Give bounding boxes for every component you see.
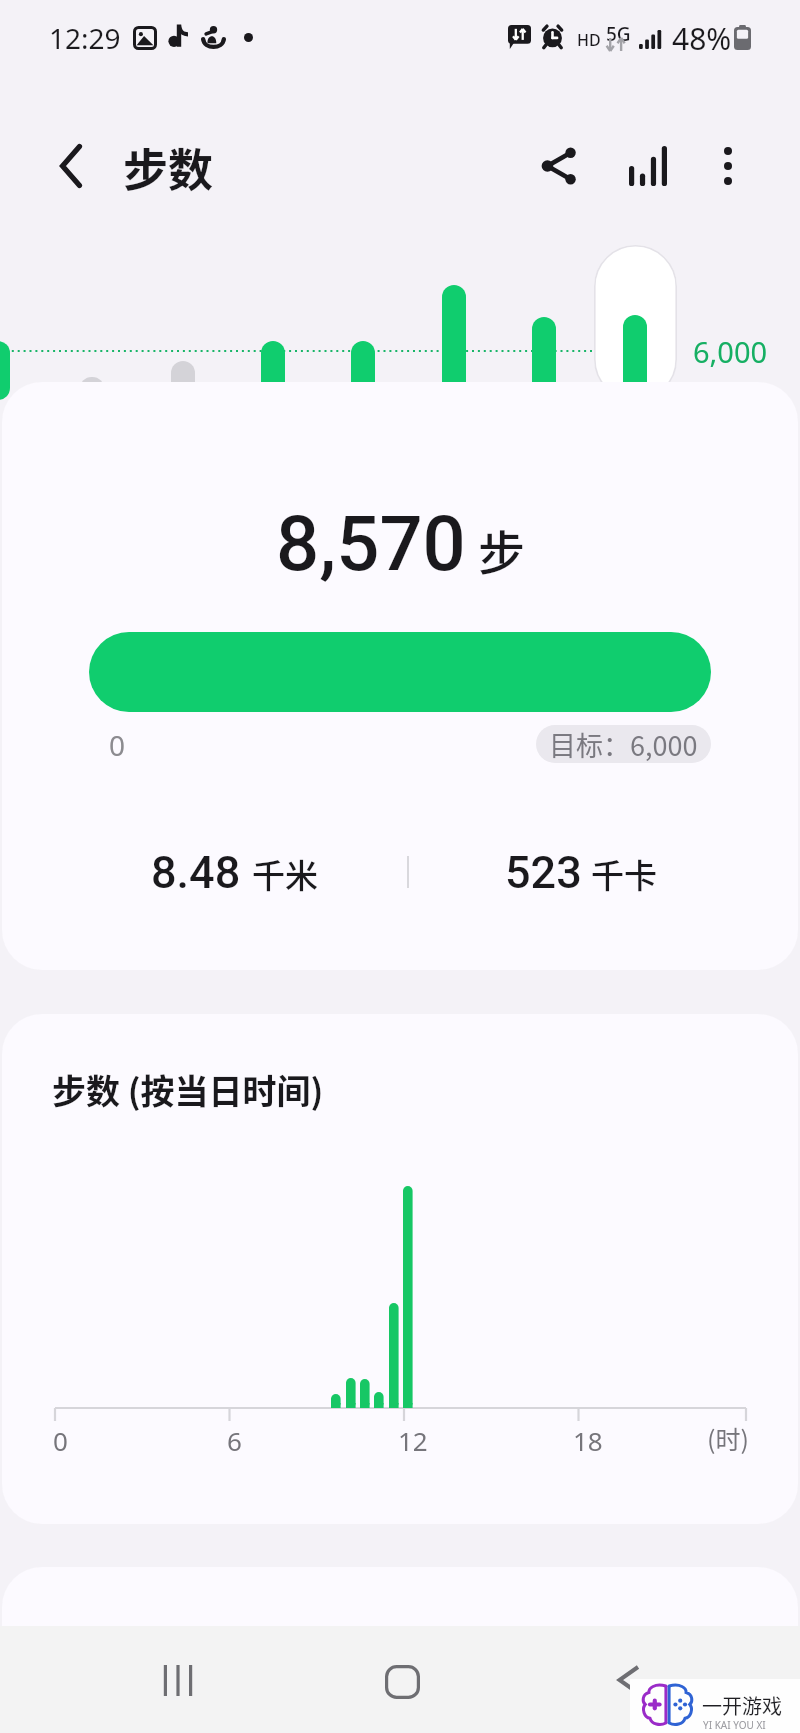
staticText: 0 (53, 1423, 68, 1458)
staticText: 8,570 (276, 499, 466, 588)
staticText: 步数 (按当日时间) (52, 1065, 324, 1114)
button[interactable]: Home (357, 1654, 447, 1710)
staticText: 步 (478, 515, 525, 583)
button[interactable]: Back (583, 1652, 673, 1708)
staticText: 0 (109, 726, 126, 764)
staticText: 千卡 (591, 850, 657, 898)
button[interactable]: Share (526, 133, 592, 199)
staticText: 6,000 (693, 332, 768, 371)
staticText: 12:29 (49, 19, 121, 57)
staticText: (时) (707, 1420, 749, 1456)
button[interactable]: Statistics (615, 133, 681, 199)
staticText: 48% (672, 18, 732, 59)
staticText: 18 (573, 1423, 603, 1458)
staticText: 8.48 (151, 846, 241, 899)
staticText: 一开游戏 (702, 1691, 782, 1720)
staticText: 523 (505, 846, 582, 899)
staticText: HD (577, 29, 601, 51)
button[interactable]: More options (695, 133, 761, 199)
staticText: 12 (398, 1423, 428, 1458)
staticText: 6 (227, 1423, 242, 1458)
staticText: 步数 (123, 135, 214, 200)
staticText: YI KAI YOU XI (703, 1718, 766, 1732)
button[interactable]: Back (38, 133, 104, 199)
button[interactable]: Recent apps (133, 1652, 223, 1708)
staticText: 千米 (252, 850, 318, 898)
staticText: 目标：6,000 (549, 725, 698, 763)
staticText: 5G (606, 21, 631, 47)
